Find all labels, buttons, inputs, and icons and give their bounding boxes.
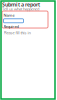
staticText: Name xyxy=(3,12,14,18)
staticText: Tell us what happened xyxy=(2,6,39,12)
staticText: Submit a report xyxy=(2,1,40,8)
staticText: Please fill this in xyxy=(3,30,30,35)
staticText: Required xyxy=(3,24,18,29)
